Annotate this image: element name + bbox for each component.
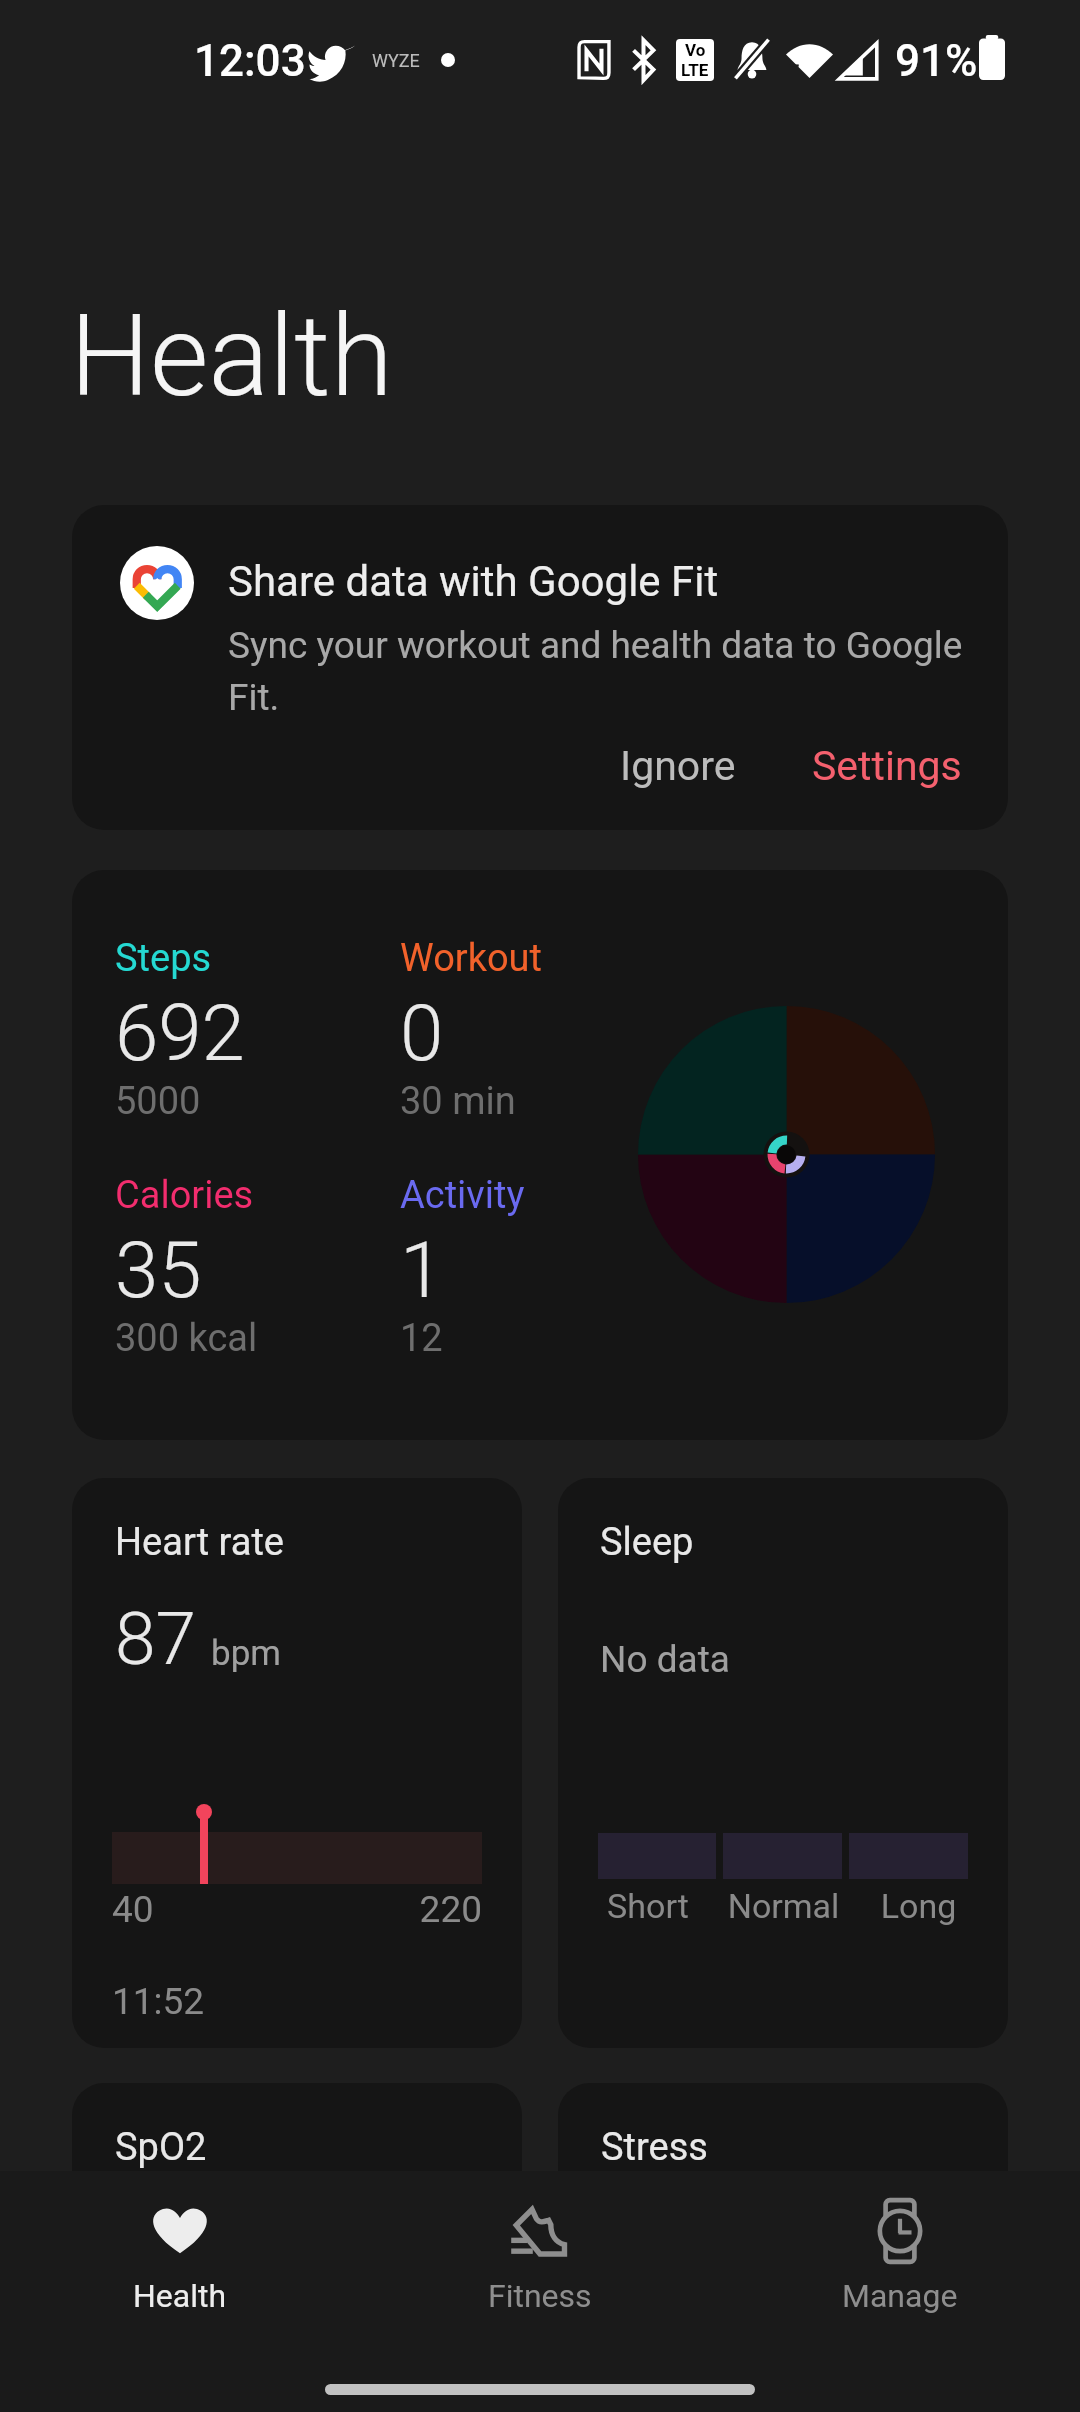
staticText: Activity [400,1173,525,1218]
other: NFC [577,40,611,80]
staticText: 692 [115,988,245,1079]
staticText: 220 [112,1888,482,1931]
staticText: 5000 [115,1079,201,1124]
staticText: 11:52 [112,1980,205,2023]
other: Google Fit [120,546,194,620]
button[interactable]: SpO2 [72,2083,522,2383]
staticText: WYZE [372,50,420,71]
button[interactable]: Stress [558,2083,1008,2383]
staticText: 35 [115,1225,202,1316]
staticText: Health [133,2277,227,2315]
other: Twitter [309,40,355,80]
button[interactable]: Ignore [590,724,766,808]
staticText: 300 kcal [115,1316,258,1361]
staticText: Ignore [620,742,736,790]
staticText: Sync your workout and health data to Goo… [228,624,988,719]
staticText: SpO2 [115,2125,207,2170]
button[interactable]: Steps [72,870,1008,1440]
staticText: Settings [812,742,962,790]
staticText: Share data with Google Fit [228,557,719,606]
staticText: Fitness [488,2277,592,2315]
staticText: 30 min [400,1079,516,1124]
staticText: 0 [400,988,444,1079]
staticText: 40 [112,1888,154,1931]
staticText: Health [70,290,393,422]
button[interactable]: Manage [720,2171,1080,2339]
staticText: 12:03 [194,35,306,87]
staticText: 87 [115,1596,196,1682]
button[interactable]: Health [0,2171,360,2339]
button[interactable]: Heart rate [72,1478,522,2048]
staticText: 12 [400,1316,443,1361]
other: Fitness [504,2195,576,2267]
other: Battery 91 percent [979,35,1005,80]
staticText: Short [580,1886,716,1926]
staticText: Heart rate [115,1520,284,1565]
staticText: Steps [115,936,212,981]
staticText: Calories [115,1173,254,1218]
staticText: Normal [716,1886,851,1926]
other: Health [144,2195,216,2267]
other: Manage [864,2195,936,2267]
button[interactable]: Sleep [558,1478,1008,2048]
staticText: bpm [211,1633,281,1674]
staticText: Sleep [600,1520,694,1565]
staticText: Long [851,1886,986,1926]
other: Notifications silenced [734,38,770,80]
staticText: Workout [400,936,542,981]
staticText: Manage [842,2277,958,2315]
staticText: Stress [601,2125,708,2170]
button[interactable]: Settings [782,724,992,808]
other: Bluetooth [628,38,659,82]
button[interactable]: Google Fit [72,505,1008,830]
other: Mobile signal [838,42,878,80]
staticText: No data [600,1638,730,1681]
staticText: 91% [895,35,978,87]
staticText: 1 [400,1225,444,1316]
other: Wi-Fi [785,42,834,80]
staticText: Vo [685,40,706,60]
staticText: LTE [681,60,709,80]
button[interactable]: Fitness [360,2171,720,2339]
